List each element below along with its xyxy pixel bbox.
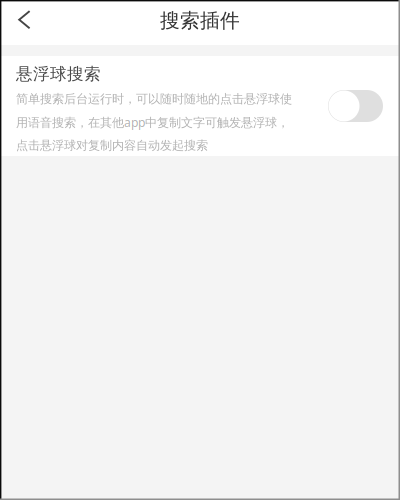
staticText: 悬浮球搜索 bbox=[16, 64, 101, 84]
staticText: 搜索插件 bbox=[160, 8, 240, 33]
button[interactable]: 悬浮球搜索 bbox=[328, 90, 383, 122]
staticText: 简单搜索后台运行时，可以随时随地的点击悬浮球使用语音搜索，在其他app中复制文字… bbox=[16, 91, 292, 153]
button[interactable]: Back bbox=[0, 0, 48, 45]
